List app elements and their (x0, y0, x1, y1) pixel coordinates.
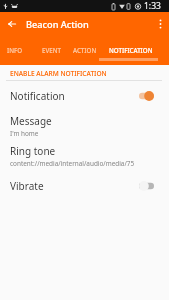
staticText: Beacon Action (26, 18, 89, 31)
staticText: EVENT (42, 46, 61, 54)
button[interactable]: Message (0, 110, 169, 140)
staticText: ENABLE ALARM NOTIFICATION (10, 69, 107, 78)
staticText: INFO (7, 46, 23, 54)
button[interactable]: Navigate up (0, 12, 24, 36)
button[interactable]: Notification (0, 83, 169, 108)
staticText: Vibrate (10, 179, 44, 193)
staticText: Notification (10, 89, 65, 103)
button[interactable]: Ring tone (0, 140, 169, 170)
staticText: 1:33 (144, 0, 161, 12)
staticText: NOTIFICATION (109, 46, 153, 54)
staticText: I'm home (10, 129, 39, 138)
staticText: Message (10, 114, 52, 128)
staticText: ACTION (73, 46, 97, 54)
button[interactable]: NOTIFICATION (105, 37, 157, 63)
button[interactable]: ACTION (59, 37, 111, 63)
button[interactable]: INFO (0, 37, 41, 63)
button[interactable]: EVENT (25, 37, 77, 63)
button[interactable]: Vibrate (0, 173, 169, 198)
staticText: Ring tone (10, 144, 56, 158)
button[interactable]: More options (151, 12, 169, 36)
staticText: content://media/internal/audio/media/75 (10, 159, 135, 168)
